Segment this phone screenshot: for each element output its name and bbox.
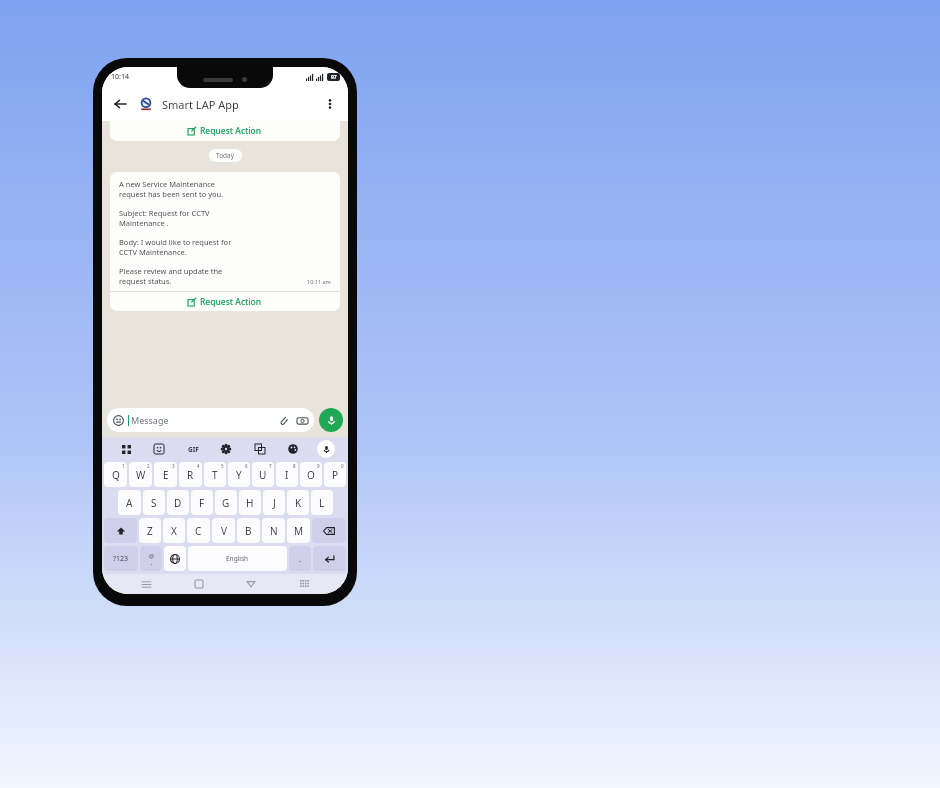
staticText: Request Action — [200, 296, 262, 308]
button[interactable]: I — [276, 462, 298, 487]
button[interactable]: S — [143, 490, 165, 515]
button[interactable]: Z — [139, 518, 161, 543]
staticText: A new Service Maintenance request has be… — [119, 179, 224, 199]
button[interactable]: E — [154, 462, 177, 487]
button[interactable]: More options — [320, 94, 340, 114]
staticText: 8 — [293, 463, 296, 469]
button[interactable]: Theme — [283, 439, 303, 459]
staticText: @ — [149, 552, 154, 559]
button[interactable]: V — [212, 518, 235, 543]
button[interactable]: J — [263, 490, 285, 515]
staticText: O — [307, 468, 315, 482]
button[interactable]: T — [204, 462, 226, 487]
staticText: Y — [236, 468, 242, 482]
staticText: Smart LAP App — [162, 97, 239, 112]
staticText: 0 — [341, 463, 344, 469]
staticText: . — [299, 553, 302, 564]
staticText: X — [171, 524, 177, 538]
other: Camera — [297, 415, 308, 426]
button[interactable]: Voice message — [319, 408, 343, 432]
staticText: English — [226, 554, 249, 563]
button[interactable]: Language — [164, 546, 186, 571]
button[interactable]: Back — [242, 575, 260, 593]
button[interactable]: Back — [110, 94, 130, 114]
staticText: R — [187, 468, 194, 482]
staticText: 3 — [172, 463, 175, 469]
button[interactable]: Recents — [137, 575, 155, 593]
staticText: Message — [131, 414, 169, 426]
button[interactable]: Symbols — [140, 546, 162, 571]
button[interactable]: Q — [104, 462, 127, 487]
staticText: 5 — [221, 463, 224, 469]
staticText: D — [174, 496, 182, 510]
staticText: 10:11 am — [307, 278, 331, 285]
staticText: 4 — [197, 463, 200, 469]
button[interactable]: P — [324, 462, 346, 487]
button[interactable]: X — [163, 518, 185, 543]
staticText: J — [273, 496, 276, 510]
button[interactable]: Hide keyboard — [295, 575, 313, 593]
staticText: 97 — [331, 74, 337, 81]
button[interactable]: ?123 — [104, 546, 138, 571]
staticText: G — [222, 496, 230, 510]
staticText: S — [151, 496, 157, 510]
staticText: Z — [147, 524, 153, 538]
staticText: 2 — [147, 463, 150, 469]
button[interactable]: L — [311, 490, 333, 515]
button[interactable]: Stickers — [149, 439, 169, 459]
button[interactable]: Message — [113, 408, 308, 432]
staticText: Q — [112, 468, 120, 482]
button[interactable]: M — [287, 518, 310, 543]
button[interactable]: D — [167, 490, 189, 515]
staticText: U — [259, 468, 267, 482]
button[interactable]: Backspace — [312, 518, 346, 543]
button[interactable]: A — [118, 490, 141, 515]
staticText: Body: I would like to request for CCTV M… — [119, 237, 232, 257]
button[interactable]: W — [129, 462, 152, 487]
button[interactable]: Request Action — [110, 292, 340, 311]
staticText: 6 — [245, 463, 248, 469]
staticText: Request Action — [200, 125, 262, 137]
staticText: M — [294, 524, 304, 538]
staticText: H — [246, 496, 254, 510]
staticText: V — [221, 524, 227, 538]
staticText: B — [245, 524, 252, 538]
button[interactable]: H — [239, 490, 261, 515]
button[interactable]: Settings — [216, 439, 236, 459]
button[interactable]: B — [237, 518, 260, 543]
button[interactable]: Home — [190, 575, 208, 593]
staticText: 1 — [122, 463, 125, 469]
staticText: T — [212, 468, 218, 482]
button[interactable]: Voice input — [317, 440, 335, 458]
button[interactable]: F — [191, 490, 213, 515]
staticText: K — [295, 496, 302, 510]
button[interactable]: Translate — [250, 439, 270, 459]
staticText: 10:14 — [111, 72, 129, 82]
button[interactable]: U — [252, 462, 274, 487]
button[interactable]: Request Action — [110, 121, 340, 141]
button[interactable]: GIF — [183, 439, 203, 459]
button[interactable]: R — [179, 462, 202, 487]
staticText: I — [285, 468, 289, 482]
button[interactable]: C — [187, 518, 210, 543]
staticText: , — [151, 559, 153, 566]
staticText: E — [163, 468, 169, 482]
staticText: Please review and update the request sta… — [119, 266, 223, 286]
staticText: 9 — [317, 463, 320, 469]
staticText: ?123 — [113, 554, 129, 564]
button[interactable]: N — [262, 518, 285, 543]
button[interactable]: Shift — [104, 518, 137, 543]
staticText: L — [319, 496, 325, 510]
button[interactable]: Y — [228, 462, 250, 487]
button[interactable]: O — [300, 462, 322, 487]
button[interactable]: English — [188, 546, 287, 571]
button[interactable]: K — [287, 490, 309, 515]
button[interactable]: G — [215, 490, 237, 515]
staticText: Today — [216, 151, 235, 160]
button[interactable]: Apps — [116, 439, 136, 459]
staticText: GIF — [188, 445, 199, 454]
staticText: N — [270, 524, 278, 538]
staticText: W — [136, 468, 146, 482]
button[interactable]: Enter — [313, 546, 346, 571]
button[interactable]: . — [289, 546, 311, 571]
